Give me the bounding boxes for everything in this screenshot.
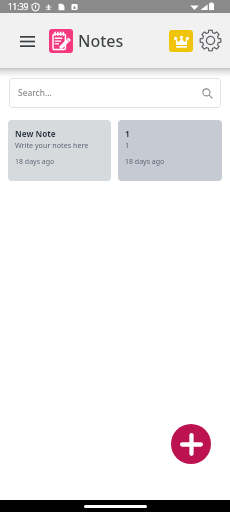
button[interactable]: New Note xyxy=(8,120,111,181)
staticText: Search... xyxy=(18,87,52,99)
staticText: Write your notes here xyxy=(15,140,89,150)
button[interactable]: Upgrade to premium xyxy=(169,30,193,52)
staticText: 1 xyxy=(125,128,130,139)
other: Search xyxy=(201,87,213,99)
staticText: 18 days ago xyxy=(125,157,165,167)
button[interactable]: Open navigation menu xyxy=(13,27,41,55)
staticText: 18 days ago xyxy=(15,157,55,167)
staticText: 1 xyxy=(125,140,130,150)
button[interactable]: Settings xyxy=(197,27,224,54)
button[interactable]: Notes xyxy=(49,29,73,53)
button[interactable]: Search... xyxy=(9,78,221,108)
button[interactable]: Add note xyxy=(171,424,211,464)
staticText: New Note xyxy=(15,128,56,139)
staticText: 11:39 xyxy=(8,1,29,12)
button[interactable]: 1 xyxy=(118,120,222,181)
staticText: Notes xyxy=(78,30,124,52)
